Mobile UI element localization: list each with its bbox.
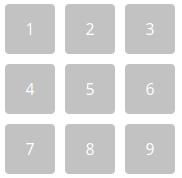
button[interactable]: 4 <box>5 64 55 114</box>
staticText: 9 <box>145 138 154 160</box>
staticText: 7 <box>25 138 34 160</box>
staticText: 1 <box>25 18 34 40</box>
staticText: 3 <box>145 18 154 40</box>
button[interactable]: 6 <box>125 64 175 114</box>
staticText: 8 <box>85 138 94 160</box>
button[interactable]: 5 <box>65 64 115 114</box>
button[interactable]: 2 <box>65 4 115 54</box>
button[interactable]: 9 <box>125 124 175 174</box>
staticText: 2 <box>85 18 94 40</box>
button[interactable]: 7 <box>5 124 55 174</box>
staticText: 4 <box>25 78 34 100</box>
button[interactable]: 8 <box>65 124 115 174</box>
staticText: 5 <box>85 78 94 100</box>
button[interactable]: 1 <box>5 4 55 54</box>
staticText: 6 <box>145 78 154 100</box>
button[interactable]: 3 <box>125 4 175 54</box>
